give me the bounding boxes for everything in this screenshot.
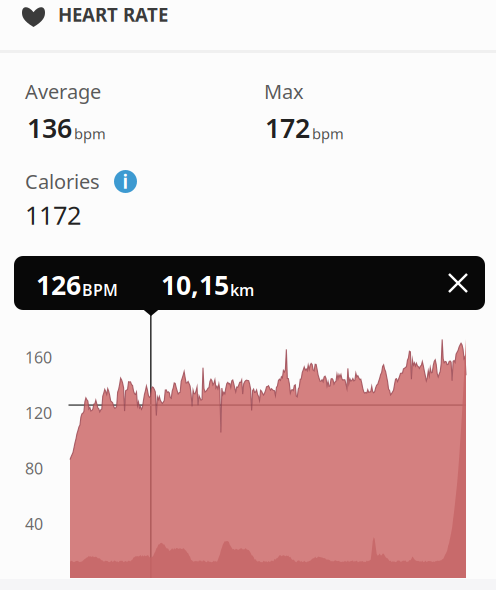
staticText: bpm: [312, 124, 344, 143]
staticText: 40: [25, 513, 43, 534]
staticText: bpm: [74, 124, 106, 143]
staticText: Average: [25, 78, 101, 105]
staticText: i: [122, 169, 128, 194]
staticText: 10,15: [161, 267, 229, 302]
staticText: 136: [27, 110, 72, 145]
button[interactable]: Close: [436, 261, 480, 305]
staticText: 160: [25, 347, 52, 368]
staticText: 120: [25, 402, 52, 423]
staticText: km: [230, 279, 254, 300]
staticText: 126: [36, 267, 81, 302]
staticText: Calories: [25, 168, 100, 195]
staticText: 1172: [25, 198, 81, 232]
staticText: 172: [265, 110, 310, 145]
staticText: BPM: [82, 279, 118, 300]
staticText: HEART RATE: [58, 2, 168, 27]
staticText: Max: [264, 78, 304, 105]
button[interactable]: Calories info: [114, 170, 137, 193]
staticText: 80: [25, 458, 43, 479]
